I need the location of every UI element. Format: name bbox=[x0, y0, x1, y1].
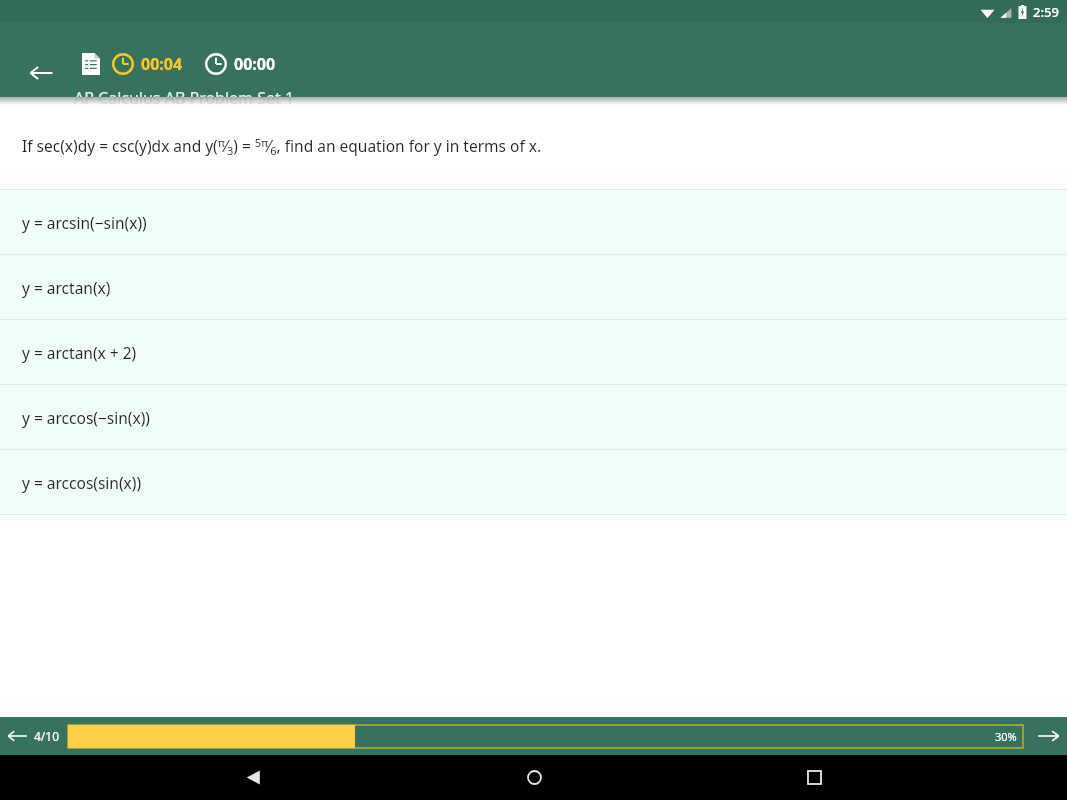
button[interactable]: Back bbox=[225, 755, 281, 800]
button[interactable]: Next question bbox=[1031, 717, 1067, 755]
staticText: AP Calculus AB Problem Set 1 bbox=[74, 87, 295, 109]
button[interactable]: 00:00 bbox=[205, 53, 276, 75]
staticText: y = arcsin(−sin(x)) bbox=[22, 212, 147, 233]
staticText: If sec(x)dy = csc(y)dx and y(π⁄3) = 5π⁄6… bbox=[22, 135, 542, 159]
button[interactable]: y = arctan(x + 2) bbox=[0, 320, 1067, 384]
button[interactable]: y = arccos(sin(x)) bbox=[0, 450, 1067, 514]
staticText: y = arctan(x + 2) bbox=[22, 342, 137, 363]
button[interactable]: Previous question bbox=[0, 717, 34, 755]
staticText: 2:59 bbox=[1033, 3, 1059, 21]
staticText: y = arccos(−sin(x)) bbox=[22, 407, 150, 428]
button[interactable]: Recent apps bbox=[786, 755, 842, 800]
staticText: 4/10 bbox=[34, 728, 60, 744]
button[interactable]: y = arctan(x) bbox=[0, 255, 1067, 319]
staticText: y = arccos(sin(x)) bbox=[22, 472, 142, 493]
button[interactable]: Back bbox=[20, 56, 62, 90]
button[interactable]: Home bbox=[506, 755, 562, 800]
button[interactable]: 00:04 bbox=[112, 53, 183, 75]
button[interactable]: Problem set bbox=[78, 51, 104, 77]
staticText: 30% bbox=[995, 729, 1017, 744]
staticText: 00:00 bbox=[234, 53, 276, 75]
staticText: 00:04 bbox=[141, 53, 183, 75]
button[interactable]: y = arcsin(−sin(x)) bbox=[0, 190, 1067, 254]
staticText: y = arctan(x) bbox=[22, 277, 111, 298]
button[interactable]: y = arccos(−sin(x)) bbox=[0, 385, 1067, 449]
